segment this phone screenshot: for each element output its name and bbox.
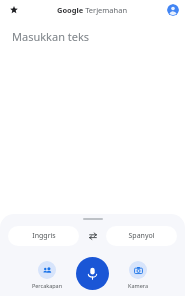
button[interactable]: Akun Google [167, 4, 179, 16]
button[interactable]: Kamera [118, 256, 158, 289]
button[interactable]: Tukar bahasa [79, 226, 106, 246]
button[interactable]: Inggris [8, 226, 79, 246]
button[interactable]: Spanyol [106, 226, 177, 246]
staticText: Masukkan teks [12, 29, 90, 44]
staticText: Percakapan [27, 282, 67, 289]
button[interactable]: Percakapan [27, 256, 67, 289]
staticText: Inggris [32, 231, 56, 241]
staticText: Spanyol [128, 231, 155, 241]
button[interactable]: Tersimpan [7, 3, 20, 16]
button[interactable]: Mikrofon [76, 257, 109, 290]
staticText: Kamera [118, 282, 158, 289]
staticText: Google Terjemahan [57, 5, 128, 15]
